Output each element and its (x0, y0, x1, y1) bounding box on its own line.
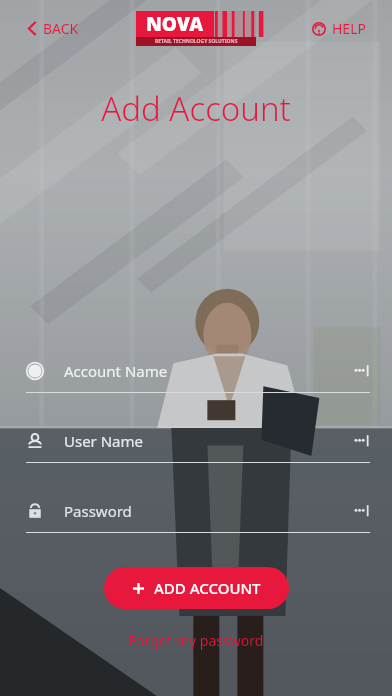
staticText: Add Account (0, 86, 392, 131)
staticText: BACK (43, 19, 79, 38)
staticText: Password (64, 501, 352, 521)
button[interactable]: Password (0, 501, 392, 533)
button[interactable]: Forgot my password (0, 629, 392, 652)
staticText: HELP (332, 19, 366, 38)
button[interactable]: ADD ACCOUNT (104, 567, 289, 609)
button[interactable]: User Name (0, 431, 392, 463)
staticText: User Name (64, 431, 352, 451)
button[interactable]: Account Name (0, 361, 392, 393)
staticText: RETAIL TECHNOLOGY SOLUTIONS (155, 38, 238, 45)
staticText: NOVA (146, 11, 204, 37)
staticText: ADD ACCOUNT (154, 578, 261, 598)
button[interactable]: BACK (24, 13, 83, 44)
staticText: Account Name (64, 361, 352, 381)
button[interactable]: HELP (308, 13, 370, 44)
button[interactable]: NOVA (136, 11, 256, 46)
